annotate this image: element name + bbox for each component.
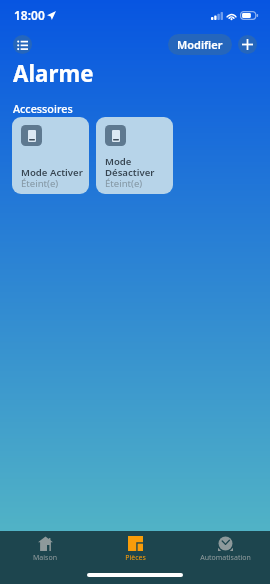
button[interactable]: List view xyxy=(13,35,32,54)
button[interactable]: Modifier xyxy=(168,34,232,55)
button[interactable]: Mode Activer xyxy=(12,117,89,194)
staticText: Mode Activer xyxy=(21,166,83,179)
staticText: 18:00 xyxy=(14,7,45,23)
staticText: Alarme xyxy=(13,58,94,88)
button[interactable]: Automatisation xyxy=(180,531,270,567)
staticText: Automatisation xyxy=(200,553,251,563)
staticText: Pièces xyxy=(125,553,146,563)
staticText: Accessoires xyxy=(13,101,73,116)
staticText: Mode xyxy=(105,155,132,168)
staticText: Maison xyxy=(33,553,57,563)
staticText: Désactiver xyxy=(105,166,155,179)
button[interactable]: Pièces xyxy=(90,531,180,567)
button[interactable]: Maison xyxy=(0,531,90,567)
staticText: Modifier xyxy=(177,37,223,52)
button[interactable]: Add xyxy=(238,35,257,54)
staticText: Éteint(e) xyxy=(105,177,143,190)
staticText: Éteint(e) xyxy=(21,177,59,190)
button[interactable]: Mode xyxy=(96,117,173,194)
